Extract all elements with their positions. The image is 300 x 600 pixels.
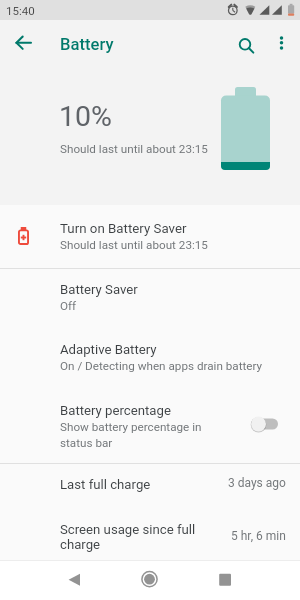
staticText: 10% [59, 100, 112, 133]
button[interactable]: Back [54, 560, 94, 600]
button[interactable]: More options [265, 25, 298, 58]
button[interactable]: Recent apps [205, 560, 245, 600]
staticText: Battery Saver [60, 282, 138, 297]
staticText: Should last until about 23:15 [60, 142, 208, 156]
button[interactable] [0, 510, 300, 560]
button[interactable] [0, 329, 300, 390]
button[interactable]: Battery percentage toggle [246, 410, 284, 438]
button[interactable] [0, 390, 300, 463]
button[interactable]: Navigate up [6, 25, 41, 60]
staticText: 5 hr, 6 min [231, 529, 286, 543]
staticText: Should last until about 23:15 [60, 238, 208, 252]
staticText: Last full charge [60, 477, 151, 492]
staticText: Turn on Battery Saver [60, 221, 187, 237]
button[interactable] [0, 464, 300, 510]
staticText: On / Detecting when apps drain battery [60, 359, 263, 373]
button[interactable] [0, 269, 300, 329]
button[interactable]: Search [228, 25, 261, 58]
staticText: Screen usage since full charge [60, 522, 196, 552]
staticText: 3 days ago [228, 476, 286, 490]
button[interactable]: Home [130, 560, 170, 600]
staticText: Battery percentage [60, 403, 171, 418]
staticText: Battery [60, 35, 114, 54]
staticText: Adaptive Battery [60, 342, 157, 357]
staticText: Show battery percentage in status bar [60, 420, 202, 449]
staticText: 15:40 [6, 4, 35, 17]
staticText: Off [60, 299, 77, 313]
button[interactable] [0, 205, 300, 268]
